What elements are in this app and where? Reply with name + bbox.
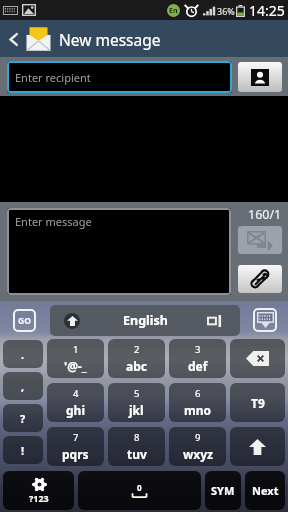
staticText: Next xyxy=(252,483,279,498)
button[interactable]: SYM xyxy=(205,471,241,510)
staticText: ! xyxy=(21,443,25,458)
staticText: 5 xyxy=(134,387,140,400)
button[interactable]: T9 xyxy=(230,383,285,422)
button[interactable]: English xyxy=(50,305,240,336)
button[interactable]: 3 xyxy=(169,339,226,378)
staticText: ?123 xyxy=(29,492,49,504)
staticText: mno xyxy=(184,402,212,418)
staticText: 36% xyxy=(217,5,235,17)
button[interactable]: Attach xyxy=(238,265,282,293)
button[interactable]: Contacts xyxy=(238,62,282,92)
staticText: 9 xyxy=(195,431,201,444)
button[interactable]: 5 xyxy=(108,383,165,422)
staticText: GO xyxy=(18,315,31,327)
button[interactable]: 1 xyxy=(47,339,104,378)
staticText: SYM xyxy=(211,483,235,498)
staticText: New message xyxy=(59,29,161,50)
button[interactable]: 7 xyxy=(47,427,104,466)
button[interactable]: 6 xyxy=(169,383,226,422)
button[interactable]: Hide keyboard xyxy=(253,308,277,332)
staticText: '@-_ xyxy=(64,358,87,374)
staticText: 1 xyxy=(73,343,79,356)
button[interactable]: Send xyxy=(238,226,282,254)
staticText: jkl xyxy=(129,402,144,418)
staticText: def xyxy=(188,358,208,374)
button[interactable]: 2 xyxy=(108,339,165,378)
button[interactable]: Shift xyxy=(230,427,285,466)
button[interactable]: 9 xyxy=(169,427,226,466)
staticText: 3 xyxy=(195,343,201,356)
staticText: , xyxy=(21,379,25,394)
button[interactable]: Symbols and numbers xyxy=(3,471,74,510)
staticText: ? xyxy=(20,411,26,426)
staticText: 4 xyxy=(73,387,79,400)
staticText: 8 xyxy=(134,431,140,444)
staticText: 0 xyxy=(137,482,142,493)
staticText: . xyxy=(21,347,25,362)
button[interactable]: . xyxy=(3,340,43,368)
staticText: 7 xyxy=(73,431,79,444)
button[interactable]: Space xyxy=(78,471,201,510)
staticText: En xyxy=(169,6,178,16)
staticText: pqrs xyxy=(62,446,89,462)
staticText: T9 xyxy=(251,395,265,411)
button[interactable]: Go xyxy=(13,309,36,332)
button[interactable]: Next xyxy=(245,471,285,510)
button[interactable]: 8 xyxy=(108,427,165,466)
staticText: Enter recipient xyxy=(15,70,91,85)
button[interactable]: ! xyxy=(3,436,43,464)
button[interactable]: Delete xyxy=(230,339,285,378)
button[interactable]: Enter recipient xyxy=(7,61,232,93)
staticText: tuv xyxy=(127,446,147,462)
staticText: 6 xyxy=(195,387,201,400)
button[interactable]: Back xyxy=(0,21,26,57)
staticText: 160/1 xyxy=(248,206,282,223)
staticText: Enter message xyxy=(15,214,92,229)
staticText: ghi xyxy=(66,402,85,418)
button[interactable]: 4 xyxy=(47,383,104,422)
button[interactable]: Enter message xyxy=(7,208,231,295)
staticText: English xyxy=(123,312,168,329)
staticText: wxyz xyxy=(183,446,213,462)
staticText: 2 xyxy=(134,343,140,356)
staticText: abc xyxy=(126,358,147,374)
button[interactable]: , xyxy=(3,372,43,400)
button[interactable]: ? xyxy=(3,404,43,432)
staticText: 14:25 xyxy=(249,1,285,20)
